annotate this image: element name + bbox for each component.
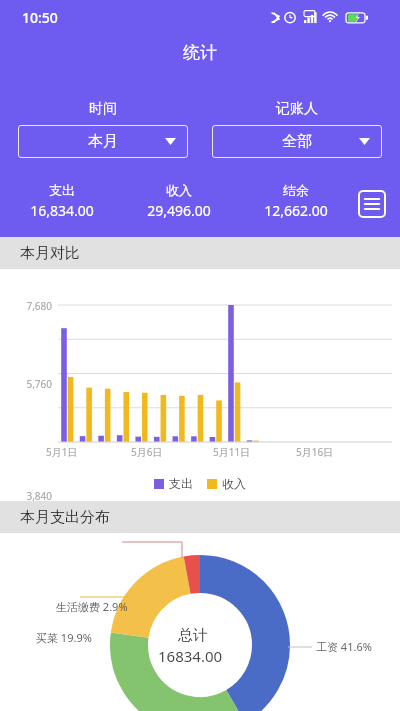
staticText: 29,496.00 — [147, 201, 211, 220]
staticText: 10:50 — [22, 8, 58, 27]
button[interactable]: 全部 — [212, 125, 382, 158]
staticText: 收入 — [166, 182, 192, 198]
staticText: 5,760 — [8, 377, 52, 391]
button[interactable]: 本月对比 — [0, 237, 400, 269]
staticText: 支出 — [49, 182, 75, 198]
staticText: 3,840 — [8, 489, 52, 501]
staticText: 统计 — [183, 42, 217, 63]
button[interactable]: 本月支出分布 — [0, 501, 400, 533]
staticText: 16,834.00 — [30, 201, 94, 220]
staticText: 12,662.00 — [264, 201, 328, 220]
staticText: 本月对比 — [20, 244, 80, 263]
staticText: 5月6日 — [131, 445, 163, 459]
staticText: 生活缴费 2.9% — [56, 599, 128, 614]
staticText: 5月11日 — [213, 445, 251, 459]
staticText: 记账人 — [276, 100, 318, 118]
staticText: 5月16日 — [296, 445, 334, 459]
staticText: 支出 — [169, 476, 193, 491]
staticText: 收入 — [222, 476, 246, 491]
button[interactable]: 列表 — [354, 186, 390, 222]
staticText: 本月 — [88, 132, 118, 151]
staticText: 总计 — [178, 626, 208, 645]
button[interactable]: 本月 — [18, 125, 188, 158]
staticText: 16834.00 — [158, 646, 223, 666]
staticText: 全部 — [282, 132, 312, 151]
staticText: 工资 41.6% — [316, 639, 372, 654]
staticText: 本月支出分布 — [20, 508, 110, 527]
staticText: 买菜 19.9% — [36, 630, 92, 645]
staticText: 时间 — [89, 100, 117, 118]
staticText: 7,680 — [8, 299, 52, 313]
staticText: 结余 — [283, 182, 309, 198]
staticText: 5月1日 — [46, 445, 78, 459]
